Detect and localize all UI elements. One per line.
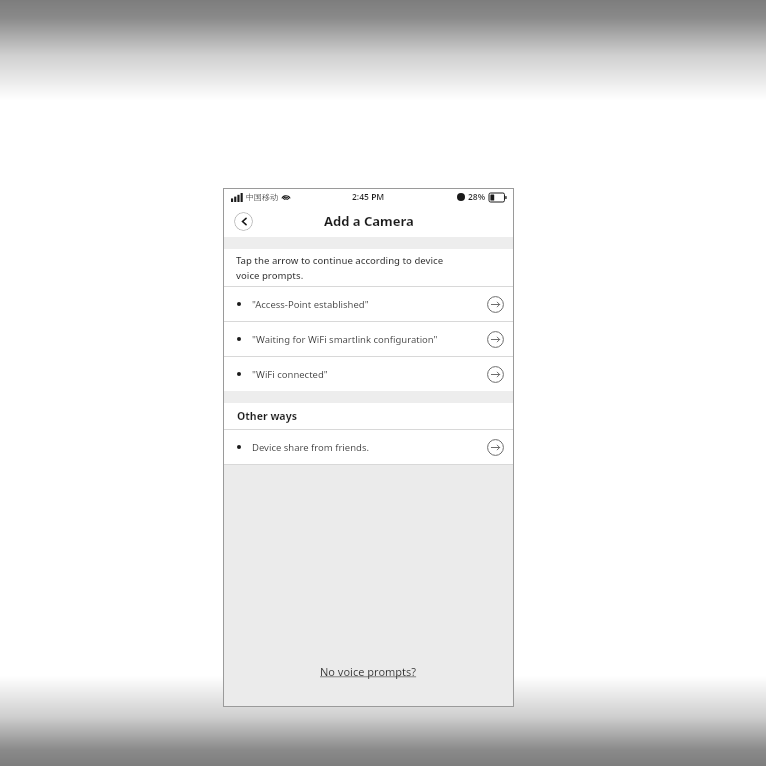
button[interactable]: No voice prompts?	[310, 658, 427, 685]
button[interactable]: "Access-Point established"	[223, 287, 514, 321]
button[interactable]: Back	[234, 212, 253, 231]
other: Continue	[487, 331, 504, 348]
staticText: 中国移动	[246, 192, 278, 202]
other: Continue	[487, 439, 504, 456]
button[interactable]: Device share from friends.	[223, 430, 514, 464]
staticText: 28%	[468, 191, 486, 203]
button[interactable]: "Waiting for WiFi smartlink configuratio…	[223, 322, 514, 356]
staticText: Other ways	[237, 409, 297, 423]
staticText: 2:45 PM	[352, 191, 385, 203]
staticText: "WiFi connected"	[252, 368, 487, 381]
other: Continue	[487, 366, 504, 383]
staticText: "Access-Point established"	[252, 298, 487, 311]
staticText: voice prompts.	[236, 269, 304, 282]
staticText: Tap the arrow to continue according to d…	[236, 254, 444, 267]
staticText: Device share from friends.	[252, 441, 487, 454]
other: Continue	[487, 296, 504, 313]
staticText: No voice prompts?	[320, 664, 417, 679]
button[interactable]: "WiFi connected"	[223, 357, 514, 391]
staticText: "Waiting for WiFi smartlink configuratio…	[252, 333, 487, 346]
staticText: Add a Camera	[324, 212, 414, 230]
